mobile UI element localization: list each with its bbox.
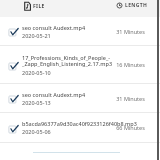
button[interactable]: Select file <box>8 123 18 133</box>
staticText: 31 Minutes <box>116 28 145 35</box>
button[interactable]: FILE <box>24 1 45 11</box>
button[interactable]: Select file <box>8 60 18 70</box>
button[interactable]: Select file <box>0 46 160 84</box>
button[interactable]: Select file <box>8 93 18 103</box>
staticText: FILE <box>33 3 45 10</box>
staticText: 17_Professions_Kinds_of_People_-_Zapp_En… <box>22 54 114 68</box>
button[interactable]: Select file <box>0 84 160 113</box>
button[interactable]: Select file <box>8 26 18 36</box>
staticText: seo consult Audext.mp4 <box>22 24 86 31</box>
staticText: 31 Minutes <box>116 95 145 102</box>
staticText: 2020-05-13 <box>22 99 51 106</box>
staticText: 2020-05-10 <box>22 69 51 76</box>
staticText: 2020-05-21 <box>22 32 51 39</box>
staticText: 2020-05-06 <box>22 128 51 135</box>
staticText: b5acda96377a9d30ac40f9233126f40b8.mp3 <box>22 120 137 127</box>
staticText: seo consult Audext.mp4 <box>22 91 86 98</box>
button[interactable]: Select file <box>0 17 160 46</box>
staticText: 16 Minutes <box>116 61 145 68</box>
staticText: LENGTH <box>125 2 148 9</box>
staticText: 66 Minutes <box>116 124 145 131</box>
button[interactable]: Select file <box>0 113 160 143</box>
button[interactable]: LENGTH <box>116 2 148 9</box>
